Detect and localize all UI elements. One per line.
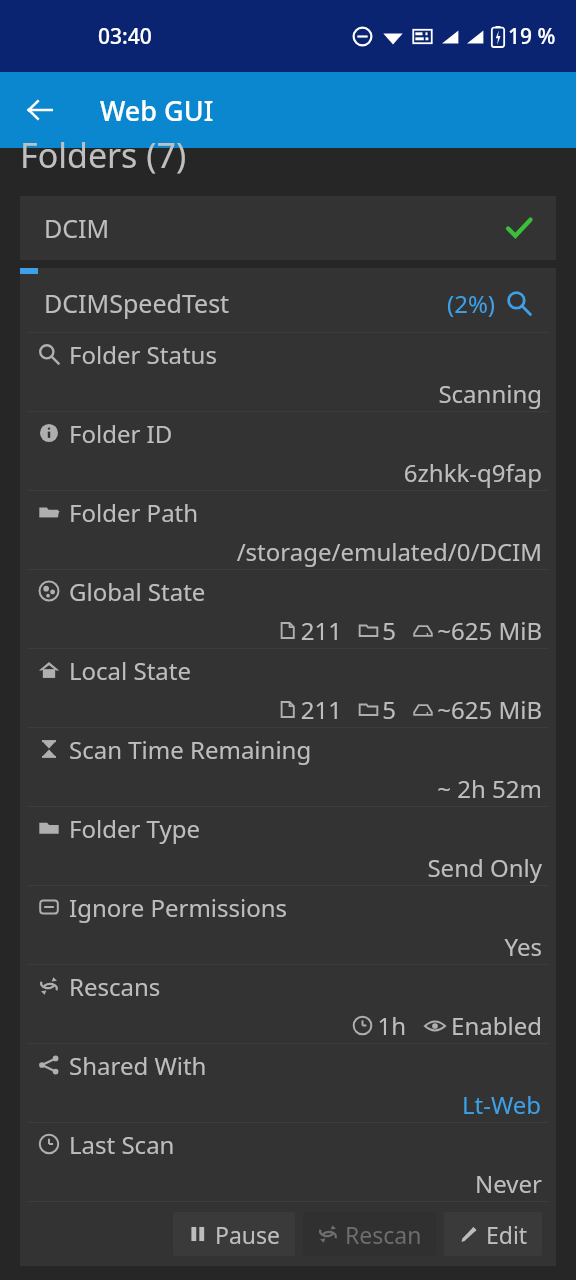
staticText: 5 (382, 693, 396, 726)
staticText: Folders (7) (20, 132, 187, 178)
staticText: Yes (504, 930, 542, 963)
staticText: 1h (377, 1009, 406, 1042)
button[interactable]: Rescans (20, 965, 556, 1044)
staticText: Local State (69, 654, 192, 687)
staticText: Rescan (345, 1219, 422, 1250)
staticText: Never (475, 1167, 542, 1200)
staticText: Last Scan (69, 1128, 175, 1161)
button[interactable]: Scan Time Remaining (20, 728, 556, 807)
staticText: Scan Time Remaining (69, 733, 312, 766)
staticText: 19 % (508, 22, 556, 51)
staticText: DCIMSpeedTest (44, 286, 230, 320)
staticText: ~ 2h 52m (437, 772, 542, 805)
staticText: 03:40 (98, 22, 152, 51)
staticText: Ignore Permissions (69, 891, 288, 924)
staticText: ~625 MiB (437, 614, 542, 647)
button[interactable]: Edit (444, 1212, 542, 1256)
staticText: Folder Path (69, 496, 199, 529)
button[interactable]: Rescan (303, 1212, 436, 1256)
staticText: Folder Status (69, 338, 217, 371)
staticText: /storage/emulated/0/DCIM (236, 535, 542, 568)
staticText: 211 (300, 614, 342, 647)
button[interactable]: Pause (173, 1212, 295, 1256)
staticText: Shared With (69, 1049, 207, 1082)
button[interactable]: Folder Status (20, 333, 556, 412)
staticText: ~625 MiB (437, 693, 542, 726)
staticText: Lt-Web (462, 1088, 542, 1121)
button[interactable]: DCIM (20, 196, 556, 260)
staticText: Folder ID (69, 417, 173, 450)
button[interactable]: Last Scan (20, 1123, 556, 1202)
staticText: 211 (300, 693, 342, 726)
staticText: Edit (486, 1219, 528, 1250)
staticText: Send Only (427, 851, 542, 884)
button[interactable]: Folder ID (20, 412, 556, 491)
staticText: Global State (69, 575, 206, 608)
button[interactable]: Shared With (20, 1044, 556, 1123)
staticText: Web GUI (100, 92, 214, 129)
staticText: Enabled (451, 1009, 542, 1042)
staticText: 5 (382, 614, 396, 647)
staticText: (2%) (447, 287, 496, 320)
staticText: DCIM (44, 211, 110, 245)
button[interactable]: DCIMSpeedTest (20, 274, 556, 332)
button[interactable]: Ignore Permissions (20, 886, 556, 965)
staticText: Scanning (438, 377, 542, 410)
staticText: Folder Type (69, 812, 201, 845)
button[interactable]: Back (14, 84, 66, 136)
button[interactable]: Global State (20, 570, 556, 649)
staticText: Pause (215, 1219, 281, 1250)
staticText: Rescans (69, 970, 161, 1003)
staticText: 6zhkk-q9fap (403, 456, 542, 489)
button[interactable]: Local State (20, 649, 556, 728)
button[interactable]: Folder Type (20, 807, 556, 886)
button[interactable]: Folder Path (20, 491, 556, 570)
